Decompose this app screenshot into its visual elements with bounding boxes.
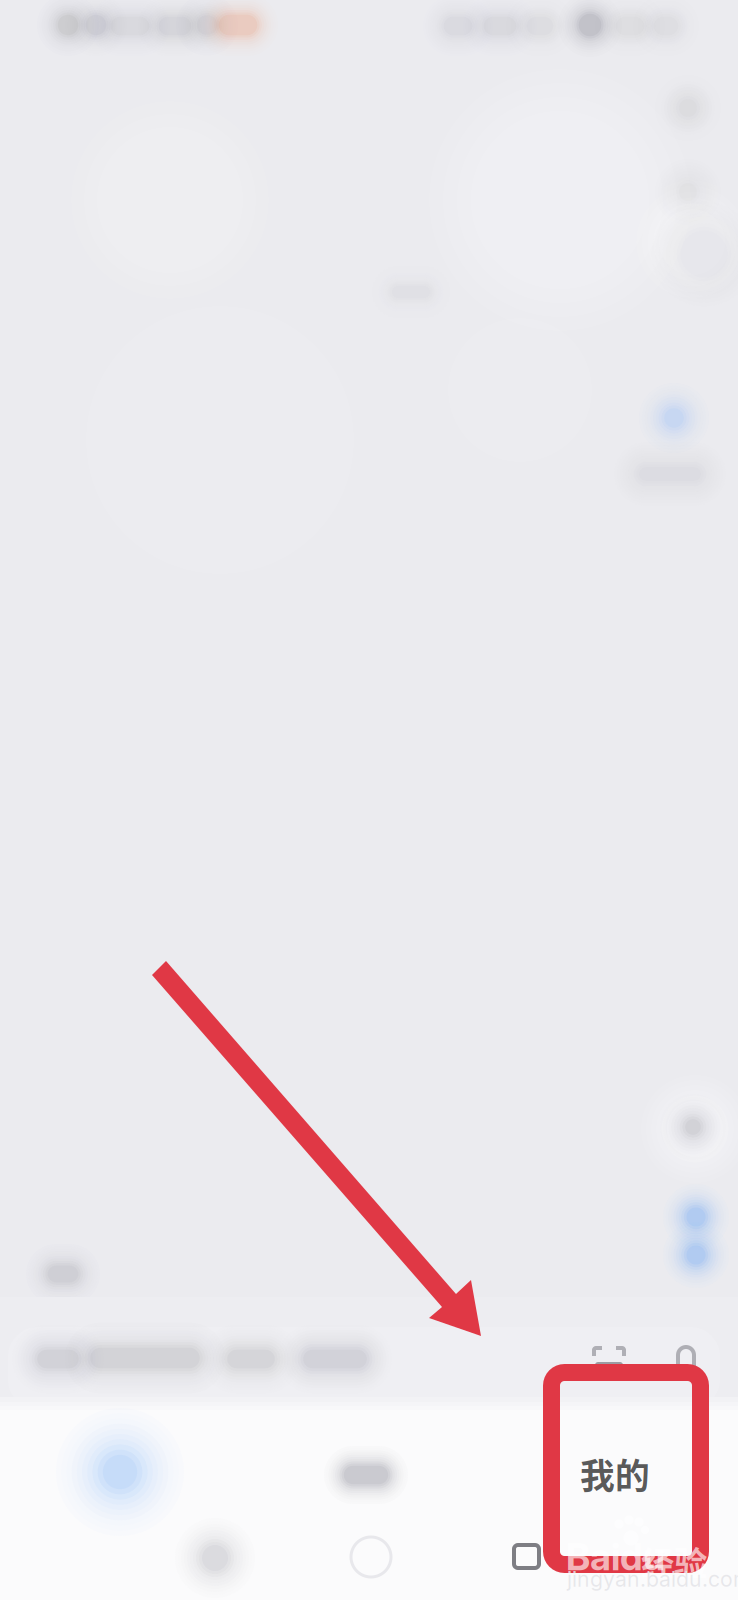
staticText: 我的: [580, 1449, 650, 1499]
button[interactable]: 我的: [555, 1444, 675, 1504]
staticText: Baidu: [566, 1534, 665, 1579]
button[interactable]: Sticker: [60, 1420, 184, 1536]
staticText: 经验: [641, 1537, 707, 1585]
button[interactable]: Lock: [664, 1338, 708, 1386]
staticText: jingyan.baidu.com: [567, 1566, 738, 1592]
button[interactable]: Scan: [581, 1338, 637, 1386]
